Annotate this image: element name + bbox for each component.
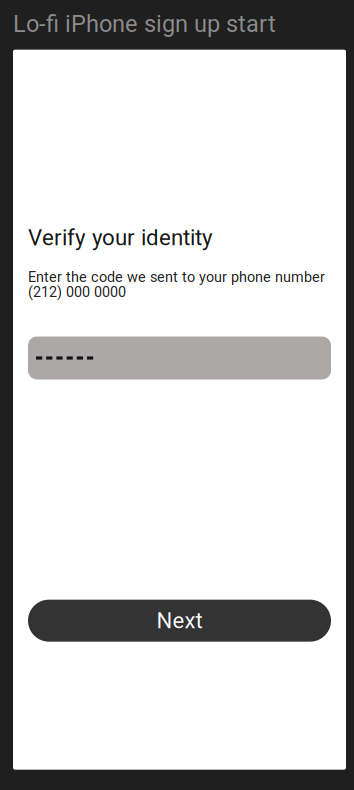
button[interactable]: Verification code (28, 336, 331, 379)
staticText: (212) 000 0000 (28, 284, 126, 300)
staticText: Lo-fi iPhone sign up start (13, 10, 276, 38)
button[interactable]: Next (28, 600, 331, 642)
staticText: Verify your identity (28, 225, 213, 251)
staticText: Enter the code we sent to your phone num… (28, 269, 325, 286)
staticText: Next (156, 608, 202, 634)
